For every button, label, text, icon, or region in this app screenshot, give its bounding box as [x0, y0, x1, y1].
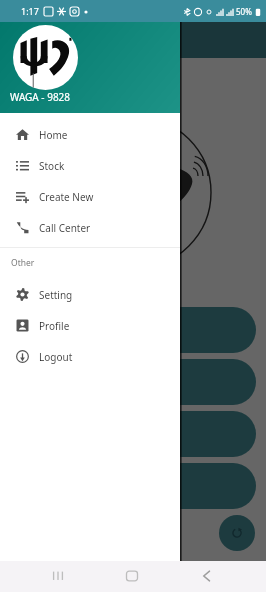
button[interactable]: Profile [0, 310, 180, 341]
button[interactable]: Stock [0, 150, 180, 181]
staticText: Setting [39, 288, 73, 302]
button[interactable] [10, 359, 256, 405]
staticText: Profile [39, 319, 70, 333]
button[interactable]: Home [0, 119, 180, 150]
button[interactable]: Recents [47, 565, 69, 587]
staticText: 50% [236, 6, 252, 17]
staticText: WAGA - 9828 [10, 90, 71, 104]
button[interactable]: Setting [0, 279, 180, 310]
button[interactable]: Home [121, 565, 143, 587]
button[interactable]: Logout [0, 341, 180, 372]
staticText: Stock [39, 159, 65, 173]
staticText: Logout [39, 350, 73, 364]
button[interactable] [10, 307, 256, 353]
staticText: Call Center [39, 221, 91, 235]
staticText: Create New [39, 190, 94, 204]
staticText: Other [11, 257, 35, 269]
button[interactable]: Call Center [0, 212, 180, 243]
staticText: Home [39, 128, 68, 142]
staticText: 1:17 [21, 5, 39, 17]
button[interactable] [10, 411, 256, 457]
button[interactable]: Create New [0, 181, 180, 212]
button[interactable]: Refresh [219, 515, 255, 551]
button[interactable]: Back [195, 565, 217, 587]
button[interactable] [10, 463, 256, 509]
